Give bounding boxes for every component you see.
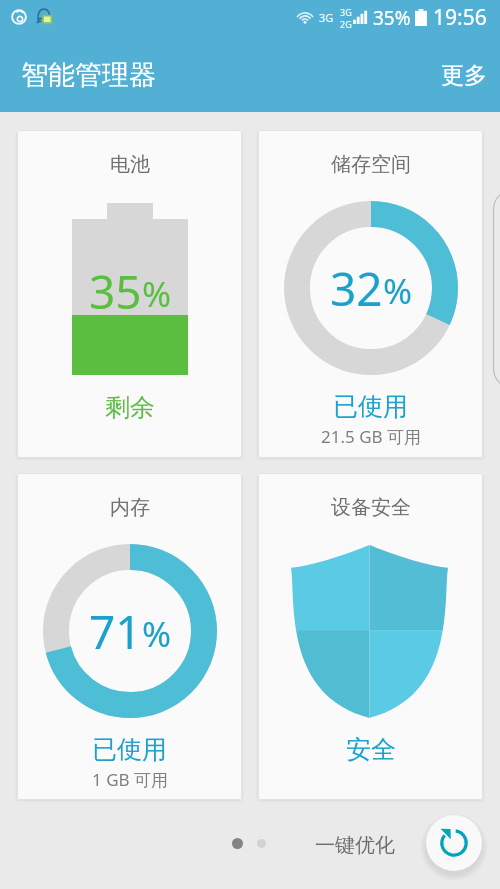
staticText: 内存 bbox=[110, 495, 150, 520]
staticText: 32 bbox=[330, 257, 383, 320]
staticText: 71 bbox=[89, 600, 142, 663]
staticText: 3G bbox=[319, 10, 334, 25]
staticText: 21.5 GB 可用 bbox=[321, 425, 421, 448]
staticText: 19:56 bbox=[433, 3, 487, 32]
staticText: % bbox=[142, 610, 172, 658]
staticText: 已使用 bbox=[92, 734, 167, 765]
staticText: 2G bbox=[340, 18, 352, 30]
staticText: 储存空间 bbox=[331, 152, 411, 177]
staticText: 1 GB 可用 bbox=[92, 768, 168, 791]
staticText: 一键优化 bbox=[315, 833, 395, 858]
staticText: 安全 bbox=[346, 734, 396, 765]
staticText: 35 bbox=[89, 260, 142, 323]
button[interactable]: 电池 bbox=[17, 130, 242, 458]
button[interactable]: 设备安全 bbox=[258, 473, 483, 800]
staticText: 智能管理器 bbox=[21, 58, 156, 92]
staticText: % bbox=[383, 267, 413, 315]
staticText: 3G bbox=[340, 6, 352, 18]
button[interactable]: 更多 bbox=[425, 47, 500, 104]
button[interactable]: 储存空间 bbox=[258, 130, 483, 458]
staticText: 更多 bbox=[441, 61, 487, 90]
staticText: 设备安全 bbox=[331, 495, 411, 520]
button[interactable]: 一键优化 bbox=[426, 815, 482, 871]
staticText: % bbox=[142, 270, 172, 318]
button[interactable]: 内存 bbox=[17, 473, 242, 800]
button[interactable]: 一键优化 bbox=[309, 827, 401, 864]
staticText: 电池 bbox=[110, 152, 150, 177]
staticText: 已使用 bbox=[333, 391, 408, 422]
staticText: 剩余 bbox=[105, 392, 155, 423]
staticText: 35% bbox=[373, 5, 411, 31]
